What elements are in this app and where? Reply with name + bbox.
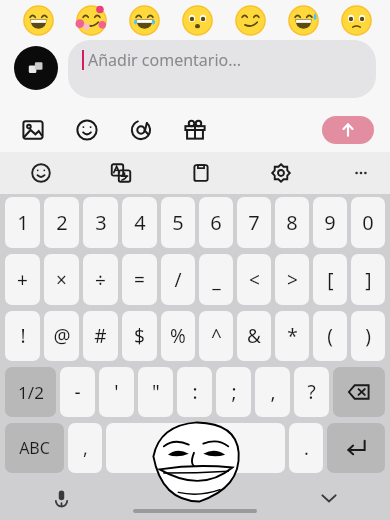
- button[interactable]: ': [99, 367, 134, 417]
- button[interactable]: =: [122, 254, 157, 305]
- staticText: ÷: [95, 267, 106, 293]
- staticText: (: [327, 323, 333, 349]
- staticText: $: [134, 323, 145, 349]
- staticText: ABC: [19, 437, 50, 459]
- button[interactable]: 4: [122, 197, 157, 248]
- staticText: ?: [307, 379, 316, 405]
- button[interactable]: Emoji 5: [234, 4, 267, 37]
- staticText: %: [170, 323, 186, 349]
- button[interactable]: 0: [351, 197, 385, 248]
- staticText: ": [152, 379, 160, 405]
- button[interactable]: 1/2: [5, 367, 56, 417]
- staticText: English (US): [159, 439, 232, 457]
- staticText: 1: [17, 209, 29, 236]
- button[interactable]: >: [275, 254, 309, 305]
- staticText: <: [249, 267, 260, 293]
- button[interactable]: Backspace: [333, 367, 385, 417]
- button[interactable]: +: [5, 254, 40, 305]
- button[interactable]: (: [313, 311, 347, 361]
- button[interactable]: Gift: [178, 113, 212, 147]
- button[interactable]: [: [313, 254, 347, 305]
- staticText: -: [74, 379, 81, 405]
- button[interactable]: 8: [275, 197, 309, 248]
- button[interactable]: $: [122, 311, 157, 361]
- staticText: ]: [365, 267, 372, 293]
- button[interactable]: Añadir comentario...: [68, 40, 376, 98]
- staticText: #: [94, 323, 107, 349]
- button[interactable]: Mention: [124, 113, 158, 147]
- staticText: 5: [172, 209, 184, 236]
- staticText: 6: [210, 209, 222, 236]
- staticText: =: [134, 267, 145, 293]
- button[interactable]: 3: [83, 197, 118, 248]
- button[interactable]: Translate: [106, 158, 136, 188]
- button[interactable]: Emoji 4: [181, 4, 214, 37]
- button[interactable]: ": [138, 367, 173, 417]
- staticText: ,: [83, 436, 88, 461]
- staticText: +: [17, 267, 28, 293]
- staticText: >: [287, 267, 298, 293]
- staticText: *: [287, 323, 298, 349]
- button[interactable]: ×: [44, 254, 79, 305]
- button[interactable]: !: [5, 311, 40, 361]
- staticText: :: [192, 379, 198, 405]
- button[interactable]: Clipboard: [186, 158, 216, 188]
- button[interactable]: _: [199, 254, 233, 305]
- button[interactable]: ABC: [5, 423, 64, 473]
- button[interactable]: Voice input: [46, 483, 76, 513]
- button[interactable]: ,: [255, 367, 290, 417]
- staticText: .: [304, 436, 309, 461]
- button[interactable]: ÷: [83, 254, 118, 305]
- button[interactable]: -: [60, 367, 95, 417]
- button[interactable]: ^: [199, 311, 233, 361]
- button[interactable]: #: [83, 311, 118, 361]
- staticText: 7: [248, 209, 260, 236]
- staticText: ^: [211, 323, 222, 349]
- button[interactable]: 1: [5, 197, 40, 248]
- button[interactable]: Emoji 1: [22, 4, 55, 37]
- staticText: 9: [324, 209, 336, 236]
- button[interactable]: 9: [313, 197, 347, 248]
- button[interactable]: ]: [351, 254, 385, 305]
- staticText: 4: [134, 209, 146, 236]
- staticText: ): [365, 323, 371, 349]
- button[interactable]: @: [44, 311, 79, 361]
- staticText: [: [327, 267, 334, 293]
- button[interactable]: Emoji 6: [287, 4, 320, 37]
- button[interactable]: ): [351, 311, 385, 361]
- button[interactable]: Emoji 2: [75, 4, 108, 37]
- button[interactable]: .: [289, 423, 323, 473]
- button[interactable]: ;: [216, 367, 251, 417]
- button[interactable]: Emoji 3: [128, 4, 161, 37]
- button[interactable]: ,: [68, 423, 102, 473]
- staticText: /: [174, 267, 182, 293]
- staticText: 1/2: [18, 381, 44, 404]
- button[interactable]: Emoji 7: [340, 4, 373, 37]
- button[interactable]: <: [237, 254, 271, 305]
- button[interactable]: Enter: [327, 423, 385, 473]
- button[interactable]: 5: [161, 197, 195, 248]
- button[interactable]: %: [161, 311, 195, 361]
- button[interactable]: Hide keyboard: [314, 483, 344, 513]
- button[interactable]: &: [237, 311, 271, 361]
- button[interactable]: Settings: [266, 158, 296, 188]
- button[interactable]: Emoji: [70, 113, 104, 147]
- button[interactable]: ?: [294, 367, 329, 417]
- staticText: 2: [56, 209, 68, 236]
- button[interactable]: Add image: [16, 113, 50, 147]
- button[interactable]: More options: [346, 158, 376, 188]
- button[interactable]: 6: [199, 197, 233, 248]
- staticText: 0: [362, 209, 374, 236]
- button[interactable]: Send: [322, 116, 374, 144]
- staticText: ×: [56, 267, 67, 293]
- button[interactable]: Profile: [14, 46, 58, 90]
- button[interactable]: English (US): [106, 423, 285, 473]
- button[interactable]: 7: [237, 197, 271, 248]
- staticText: !: [20, 323, 26, 349]
- button[interactable]: /: [161, 254, 195, 305]
- button[interactable]: *: [275, 311, 309, 361]
- button[interactable]: Stickers: [26, 158, 56, 188]
- staticText: 8: [286, 209, 298, 236]
- button[interactable]: 2: [44, 197, 79, 248]
- button[interactable]: :: [177, 367, 212, 417]
